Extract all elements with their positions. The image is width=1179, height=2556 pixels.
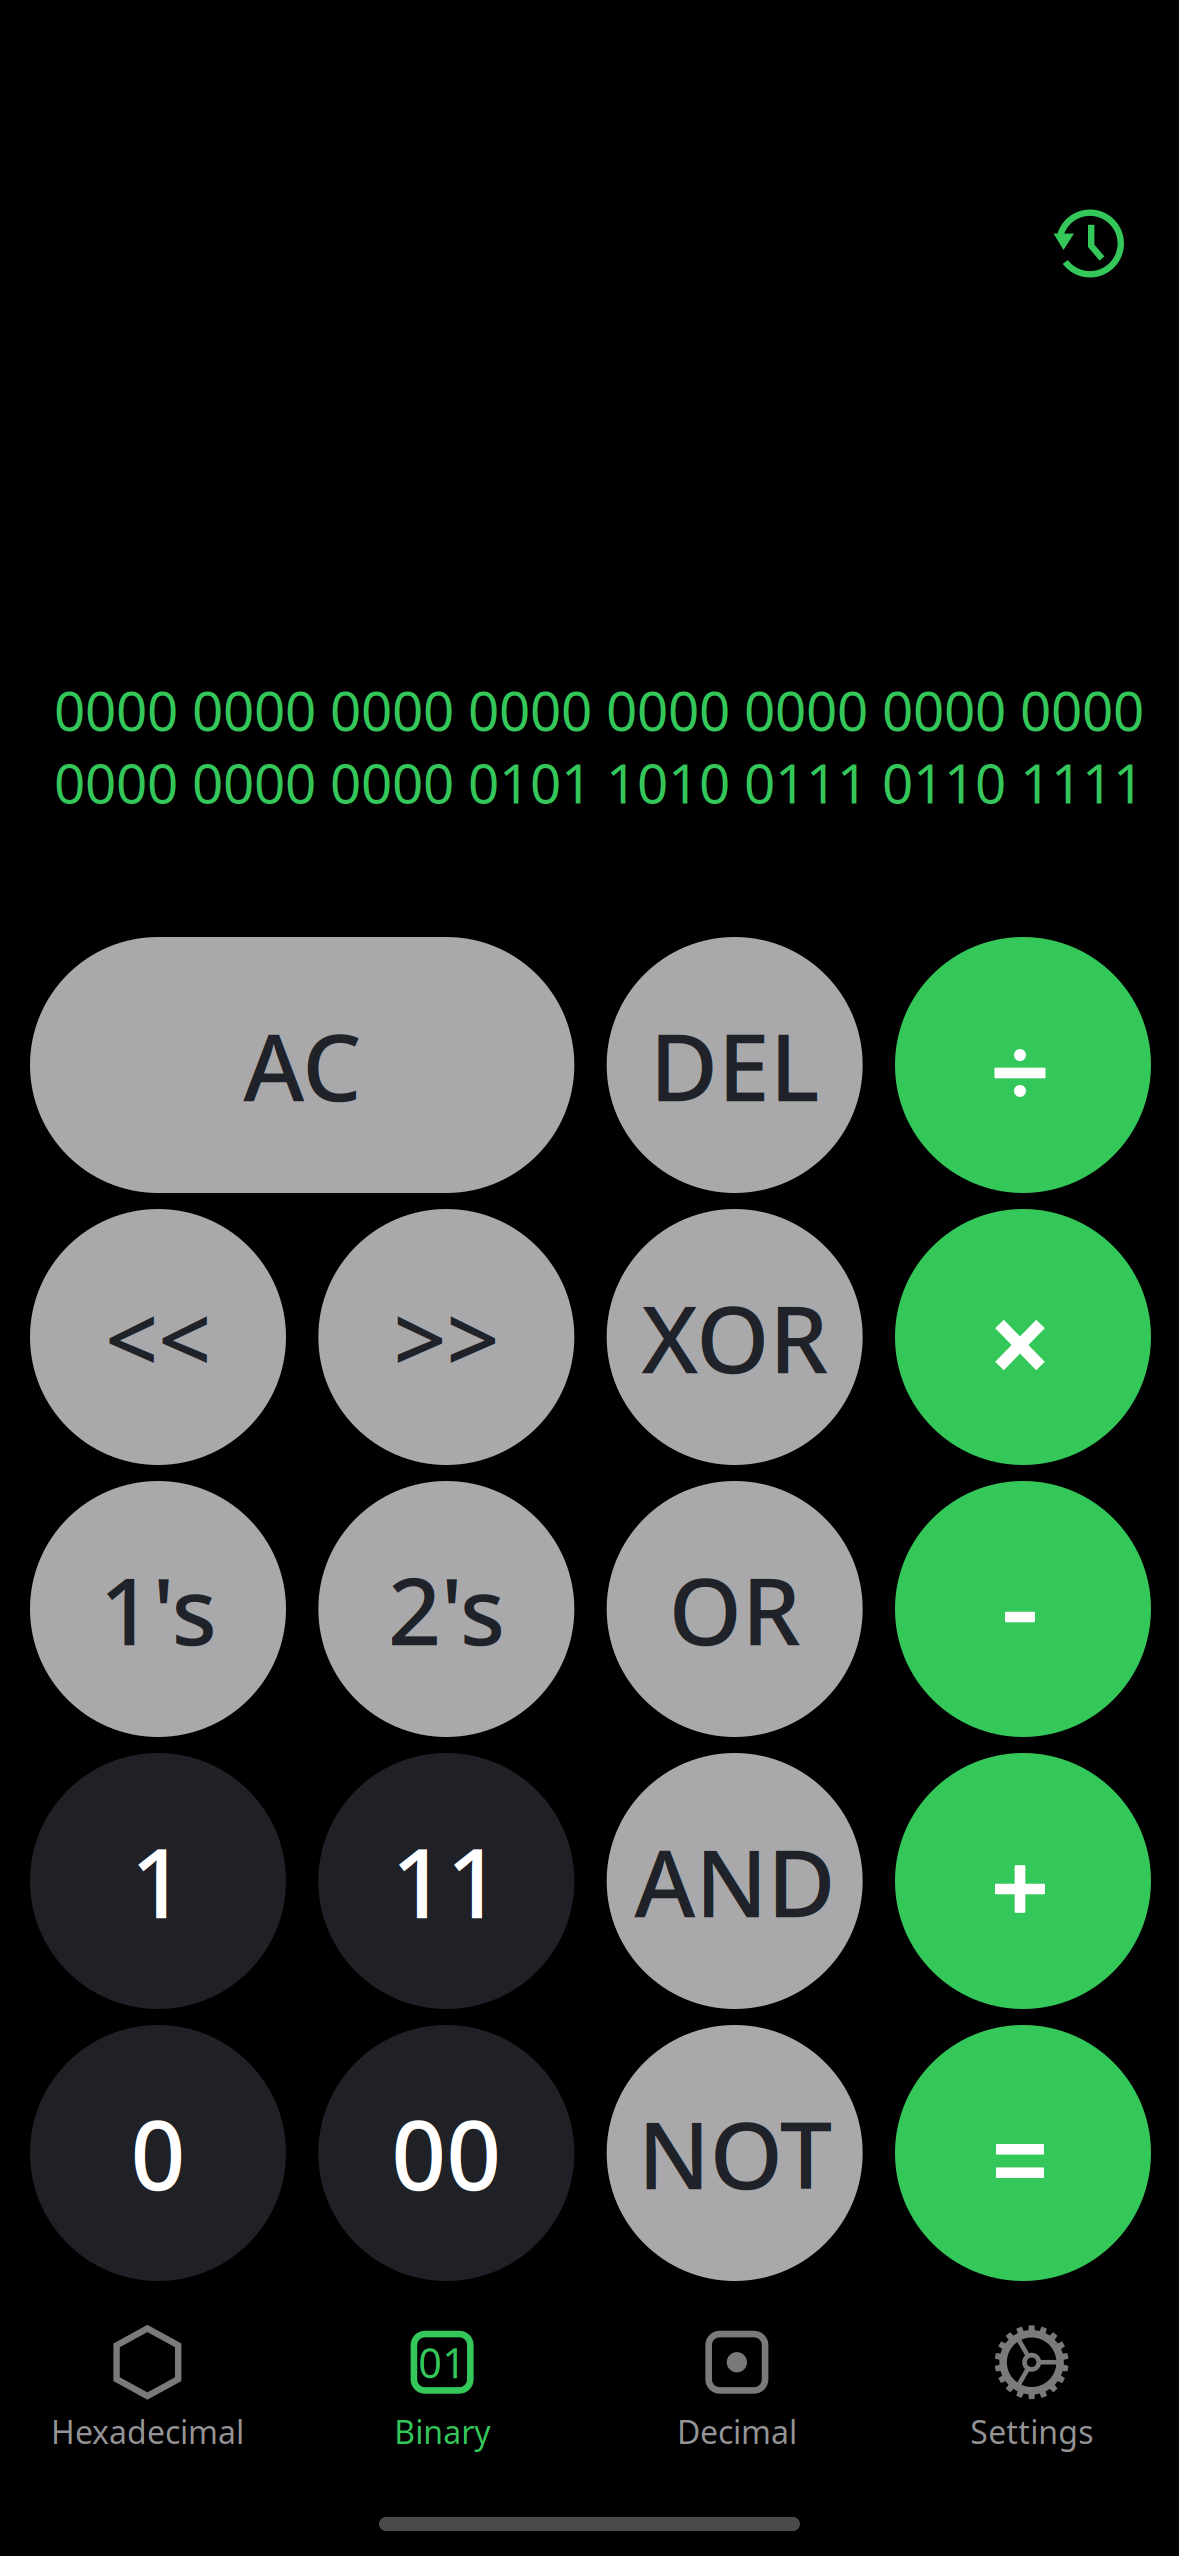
button[interactable]: Multiply [895, 1209, 1151, 1465]
staticText: OR [669, 1547, 801, 1671]
staticText: 01 [418, 2335, 466, 2390]
staticText: 1's [99, 1547, 216, 1671]
staticText: 0000 0000 0000 0101 1010 0111 0110 1111 [54, 746, 1144, 819]
button[interactable]: 01 [295, 2326, 590, 2451]
button[interactable]: Settings [884, 2326, 1179, 2451]
button[interactable]: Plus [895, 1753, 1151, 2009]
staticText: Decimal [677, 2410, 797, 2453]
staticText: 0000 0000 0000 0000 0000 0000 0000 0000 [54, 673, 1144, 746]
button[interactable]: NOT [607, 2025, 863, 2281]
button[interactable]: Divide [895, 937, 1151, 1193]
button[interactable]: 1's [30, 1481, 286, 1737]
button[interactable]: 00 [318, 2025, 574, 2281]
staticText: 00 [391, 2089, 501, 2217]
staticText: Hexadecimal [51, 2410, 244, 2453]
staticText: >> [393, 1275, 499, 1399]
button[interactable]: AC [30, 937, 574, 1193]
staticText: DEL [650, 1003, 820, 1127]
button[interactable]: << [30, 1209, 286, 1465]
button[interactable]: 0 [30, 2025, 286, 2281]
button[interactable]: OR [607, 1481, 863, 1737]
button[interactable]: History [1030, 183, 1150, 303]
staticText: XOR [641, 1275, 828, 1399]
button[interactable]: Minus [895, 1481, 1151, 1737]
staticText: Binary [394, 2410, 490, 2453]
staticText: AC [243, 1003, 361, 1127]
staticText: NOT [638, 2091, 832, 2215]
button[interactable]: DEL [607, 937, 863, 1193]
staticText: AND [634, 1819, 835, 1943]
staticText: 0 [130, 2089, 185, 2217]
staticText: << [105, 1275, 211, 1399]
button[interactable]: XOR [607, 1209, 863, 1465]
button[interactable]: AND [607, 1753, 863, 2009]
button[interactable]: 1 [30, 1753, 286, 2009]
button[interactable]: Hexadecimal [0, 2326, 295, 2451]
staticText: Settings [970, 2410, 1093, 2453]
staticText: 2's [388, 1547, 505, 1671]
button[interactable]: Equals [895, 2025, 1151, 2281]
button[interactable]: Decimal [589, 2326, 884, 2451]
staticText: 11 [391, 1817, 501, 1945]
button[interactable]: 2's [318, 1481, 574, 1737]
staticText: 1 [130, 1817, 185, 1945]
button[interactable]: >> [318, 1209, 574, 1465]
button[interactable]: 11 [318, 1753, 574, 2009]
